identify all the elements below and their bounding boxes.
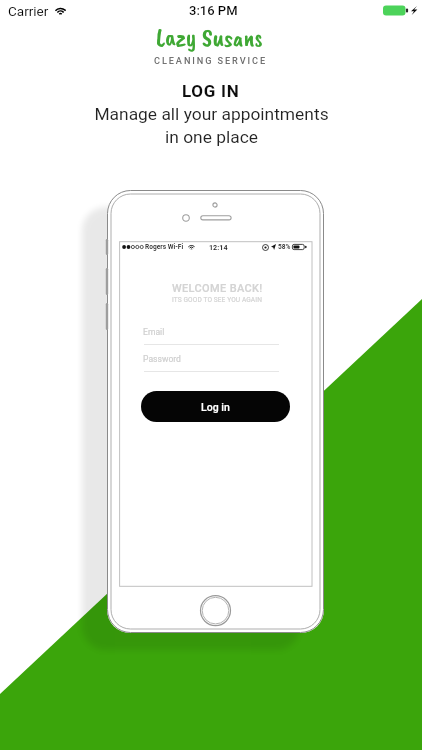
staticText: Lazy Susans [156,22,263,54]
staticText: LOG IN [182,81,240,101]
staticText: 58% [278,243,291,251]
staticText: 12:14 [209,243,228,251]
staticText: 3:16 PM [189,3,238,18]
staticText: Carrier [8,3,49,19]
staticText: Email [143,327,165,337]
button[interactable]: Email [143,325,279,345]
button[interactable]: Log in [141,391,290,422]
staticText: CLEANING SERVICE [154,55,268,66]
staticText: Manage all your appointments in one plac… [94,104,329,147]
staticText: Log in [201,401,230,413]
button[interactable]: Password [143,352,279,372]
staticText: Password [143,354,181,364]
staticText: Rogers Wi-Fi [145,243,184,251]
staticText: WELCOME BACK! [172,282,263,295]
staticText: ITS GOOD TO SEE YOU AGAIN [172,296,262,304]
